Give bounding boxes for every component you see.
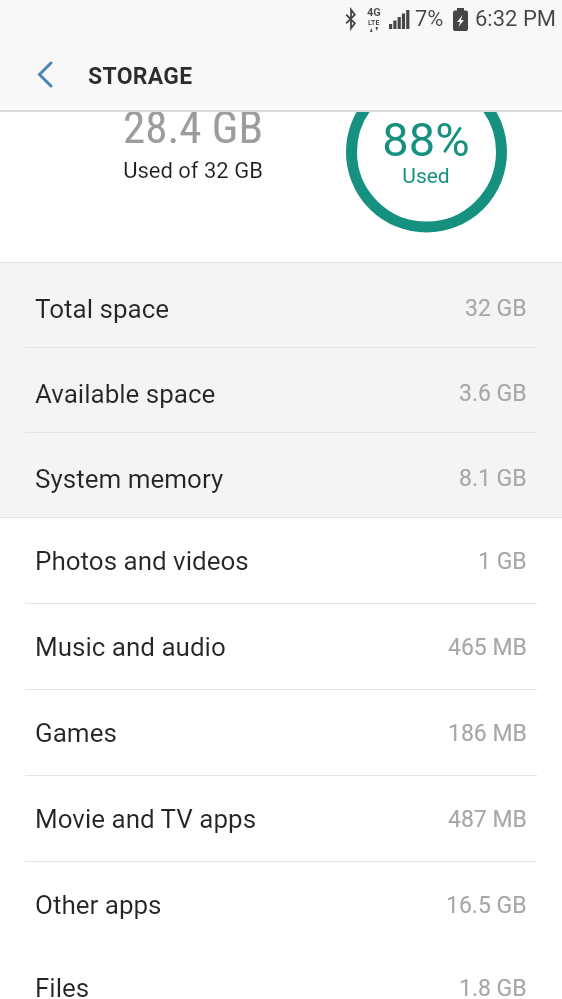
staticText: Used of 32 GB — [0, 158, 386, 184]
button[interactable]: Movie and TV apps — [0, 776, 562, 862]
staticText: 88% — [326, 112, 526, 167]
button[interactable]: Music and audio — [0, 604, 562, 690]
staticText: STORAGE — [88, 63, 193, 90]
staticText: LTE — [368, 19, 380, 27]
staticText: System memory — [35, 464, 224, 494]
staticText: 1.8 GB — [459, 975, 527, 999]
staticText: 1 GB — [478, 548, 527, 575]
button[interactable]: Games — [0, 690, 562, 776]
staticText: Available space — [35, 379, 216, 409]
staticText: 186 MB — [448, 720, 527, 747]
staticText: Files — [35, 973, 90, 999]
staticText: Music and audio — [35, 632, 226, 662]
staticText: Used — [326, 164, 526, 189]
button[interactable]: Total space — [0, 263, 562, 348]
staticText: Games — [35, 718, 117, 748]
staticText: 4G — [367, 6, 381, 19]
staticText: Movie and TV apps — [35, 804, 257, 834]
button[interactable]: Other apps — [0, 862, 562, 948]
staticText: 7% — [415, 6, 444, 32]
button[interactable]: Photos and videos — [0, 518, 562, 604]
staticText: Photos and videos — [35, 546, 249, 576]
staticText: 32 GB — [465, 295, 527, 322]
staticText: Total space — [35, 294, 170, 324]
staticText: 28.4 GB — [0, 112, 386, 154]
staticText: 6:32 PM — [475, 6, 556, 32]
staticText: 8.1 GB — [459, 465, 527, 492]
button[interactable]: System memory — [0, 433, 562, 518]
button[interactable]: Available space — [0, 348, 562, 433]
button[interactable]: Files — [0, 945, 562, 999]
staticText: 3.6 GB — [459, 380, 527, 407]
staticText: Other apps — [35, 890, 162, 920]
staticText: 487 MB — [448, 806, 527, 833]
staticText: 16.5 GB — [446, 892, 527, 919]
button[interactable] — [22, 49, 66, 93]
staticText: 465 MB — [448, 634, 527, 661]
